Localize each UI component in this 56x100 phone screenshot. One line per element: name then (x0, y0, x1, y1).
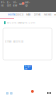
staticText: File (1, 1, 5, 7)
staticText: Drive (34, 13, 41, 16)
button[interactable]: Sign in (24, 65, 32, 70)
staticText: Home (8, 13, 16, 16)
staticText: Help (25, 1, 30, 7)
staticText: Edit (7, 1, 11, 7)
staticText: More (54, 13, 56, 16)
staticText: Mail (26, 13, 31, 16)
staticText: View (13, 1, 17, 7)
staticText: News (44, 13, 51, 16)
staticText: Email address (5, 40, 23, 43)
staticText: secure.example.com (7, 21, 35, 24)
staticText: Docs (16, 13, 23, 16)
staticText: Go (19, 2, 23, 6)
staticText: Sign in (24, 64, 31, 71)
